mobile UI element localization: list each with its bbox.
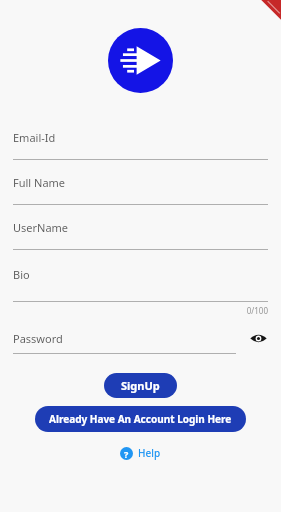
button[interactable]: Full Name — [13, 175, 268, 190]
button[interactable]: Bio — [13, 267, 268, 282]
staticText: Full Name — [13, 175, 66, 190]
staticText: Email-Id — [13, 130, 56, 145]
button[interactable]: Show password — [248, 328, 268, 348]
button[interactable]: SignUp — [104, 373, 177, 398]
other: Notice ribbon — [258, 0, 281, 23]
staticText: ? — [124, 448, 129, 460]
button[interactable]: Already Have An Account Login Here — [35, 406, 246, 432]
staticText: 0/100 — [13, 305, 268, 316]
button[interactable]: UserName — [13, 220, 268, 235]
staticText: Bio — [13, 267, 30, 282]
other: App logo — [108, 28, 173, 93]
button[interactable]: Email-Id — [13, 130, 268, 145]
staticText: UserName — [13, 220, 69, 235]
button[interactable]: Password — [13, 331, 63, 346]
staticText: SignUp — [121, 378, 160, 393]
staticText: Already Have An Account Login Here — [49, 412, 232, 426]
button[interactable]: ? — [114, 443, 167, 463]
staticText: Help — [138, 446, 161, 460]
